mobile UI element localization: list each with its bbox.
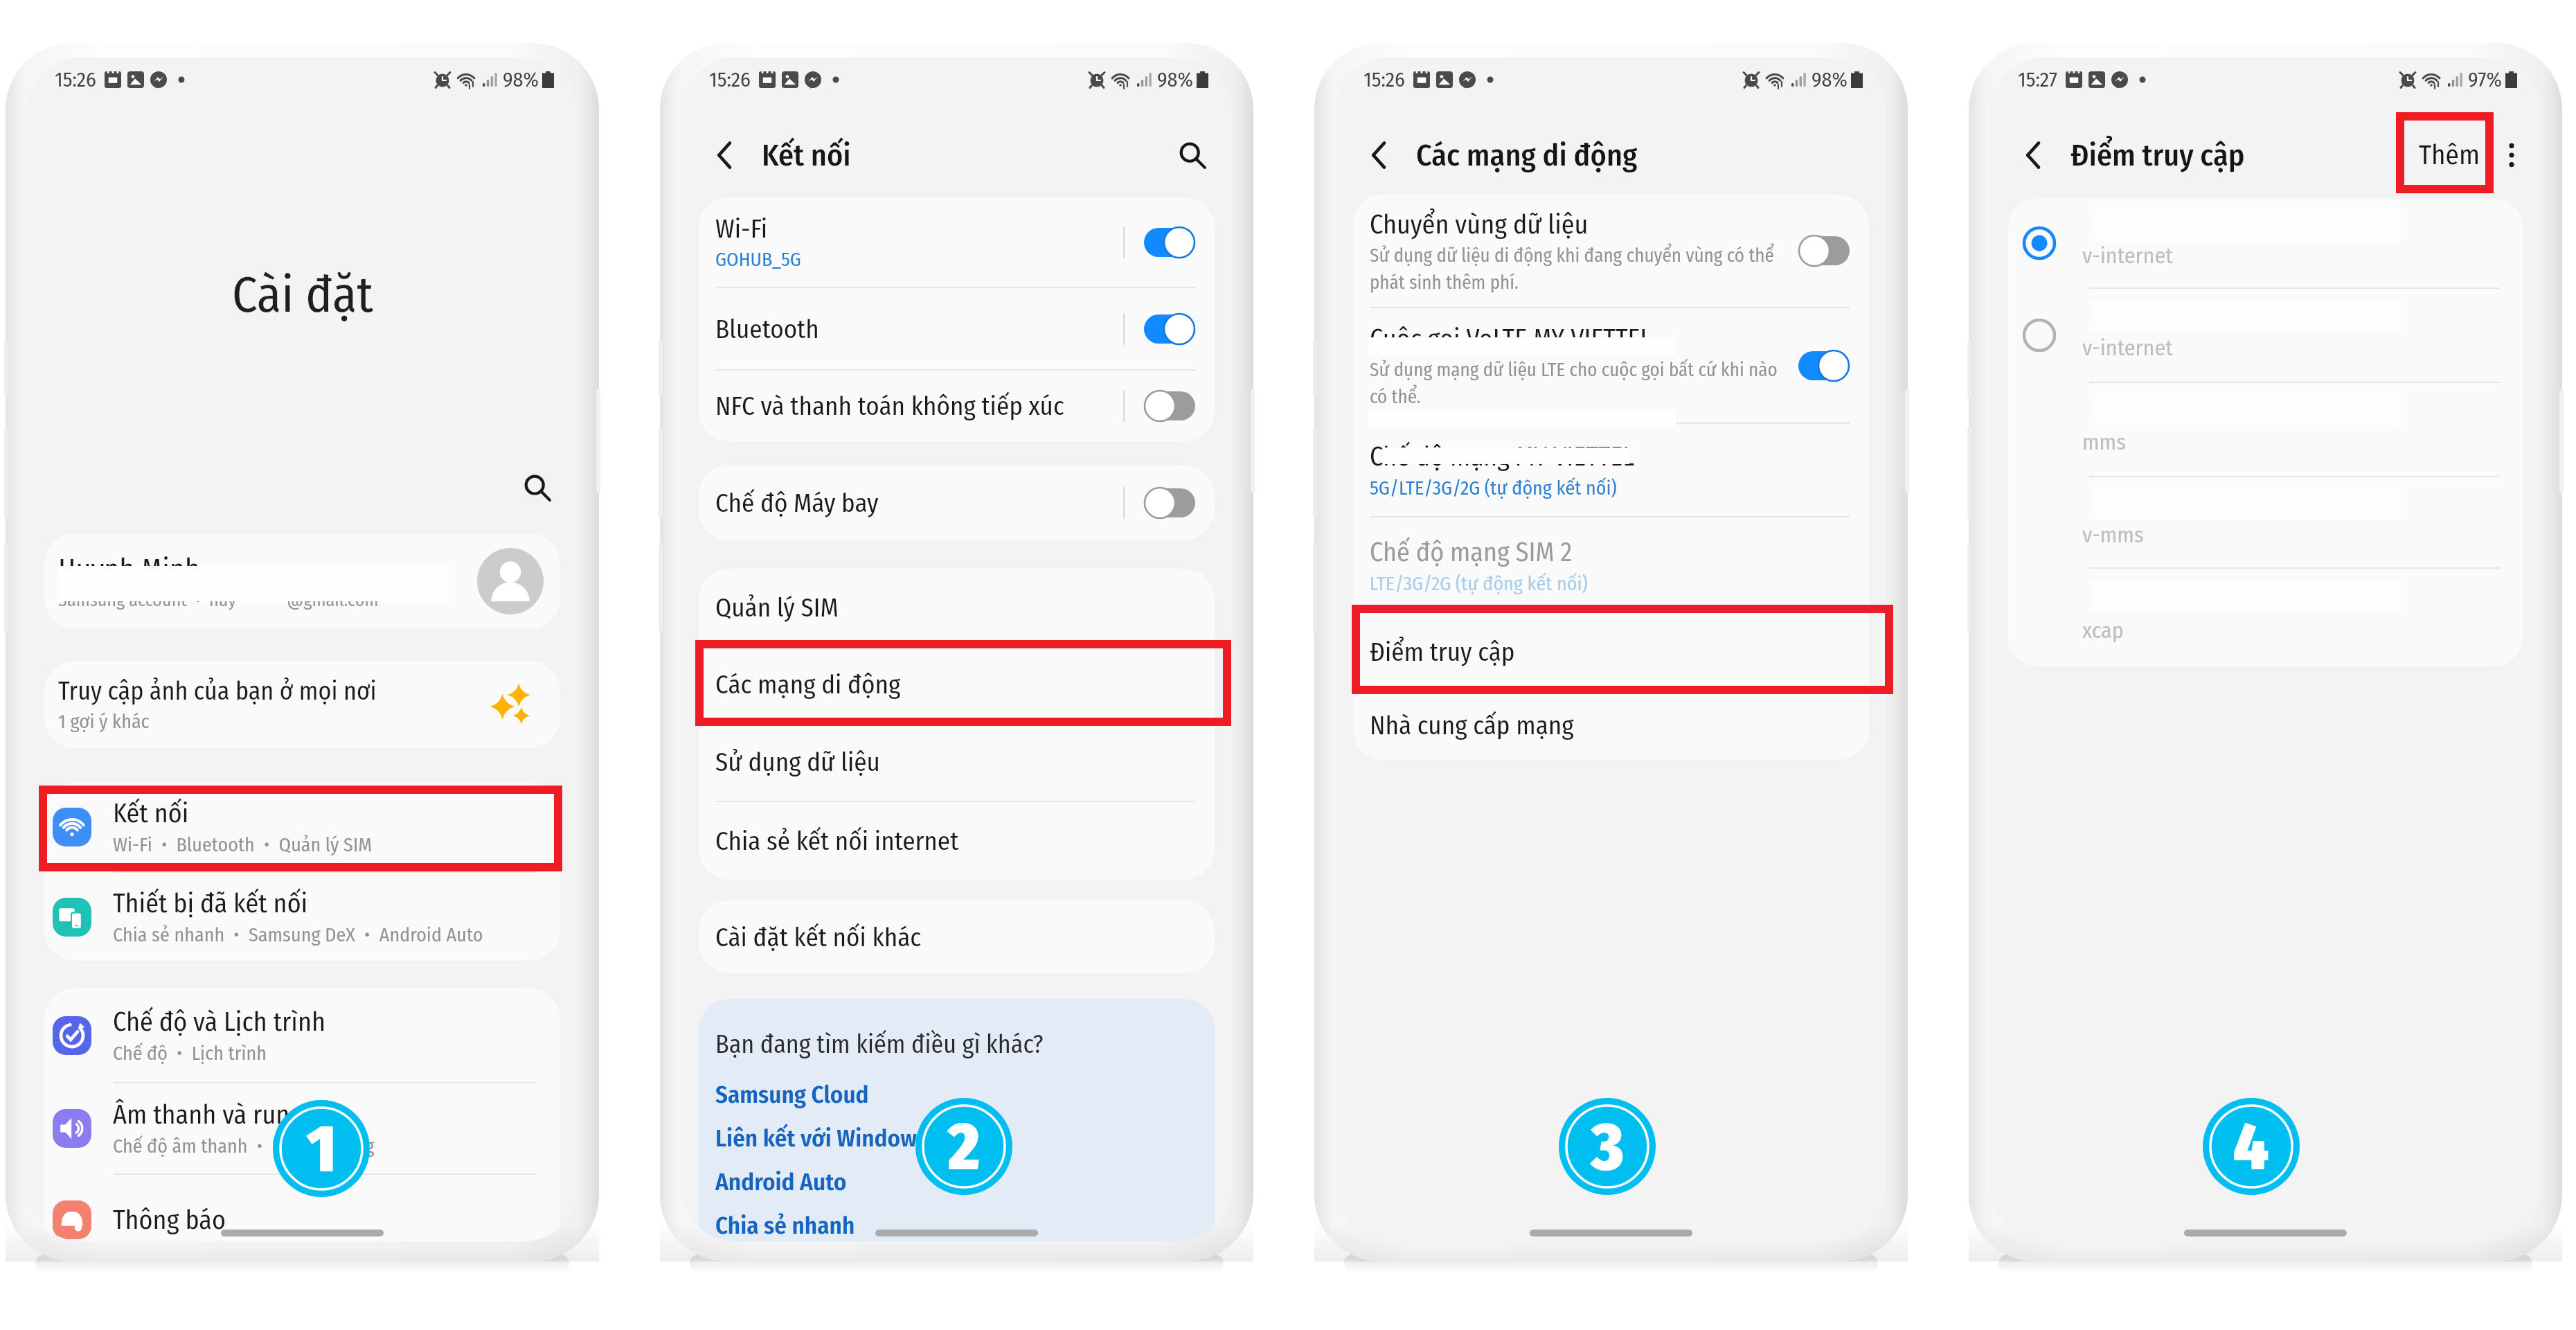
staticText: 15:26	[55, 67, 96, 92]
staticText: mms	[2082, 429, 2126, 455]
staticText: Cuộc gọi VoLTE MY VIETTEL	[1370, 323, 1652, 355]
button[interactable]: Chia sẻ kết nối internet	[699, 802, 1215, 880]
staticText: Wi-Fi • Bluetooth • Quản lý SIM	[113, 833, 373, 857]
button[interactable]: Chế độ Máy bay	[699, 465, 1215, 540]
staticText: Âm thanh và rung	[113, 1099, 303, 1130]
staticText: GOHUB_5G	[715, 248, 801, 272]
button[interactable]: Cài đặt kết nối khác	[699, 901, 1215, 973]
staticText: Bluetooth	[715, 314, 819, 344]
button[interactable]: Search	[1172, 135, 1213, 175]
button[interactable]: Back	[2014, 135, 2054, 175]
staticText: Huynh Minh	[58, 552, 201, 587]
button[interactable]: Android Auto	[715, 1167, 847, 1196]
button[interactable]: Liên kết với Windows	[715, 1124, 928, 1153]
staticText: 4	[2233, 1107, 2269, 1187]
button[interactable]: Chế độ mạng MY VIETTEL	[1353, 424, 1869, 516]
staticText: Android Auto	[715, 1167, 847, 1196]
button[interactable]: Wi-Fi	[1144, 227, 1195, 258]
staticText: v-mms	[2082, 522, 2144, 548]
staticText: Sử dụng mạng dữ liệu LTE cho cuộc gọi bấ…	[1370, 359, 1785, 408]
staticText: Thiết bị đã kết nối	[113, 887, 308, 919]
button[interactable]: Back	[1359, 135, 1399, 175]
staticText: Thêm	[2419, 139, 2480, 172]
staticText: Các mạng di động	[715, 669, 901, 700]
staticText: Thông báo	[113, 1204, 226, 1236]
staticText: Truy cập ảnh của bạn ở mọi nơi	[58, 676, 377, 706]
button[interactable]: Chia sẻ nhanh	[715, 1211, 855, 1240]
button[interactable]: Cuộc gọi VoLTE	[1798, 350, 1850, 382]
button[interactable]: xcap	[2007, 569, 2523, 666]
button[interactable]: Điểm truy cập	[1353, 614, 1869, 690]
button[interactable]: v-mms	[2007, 477, 2523, 567]
staticText: Chế độ Máy bay	[715, 488, 879, 518]
button[interactable]: Kết nối	[44, 783, 560, 871]
button[interactable]: Chuyển vùng dữ liệu	[1353, 195, 1869, 307]
button[interactable]: Các mạng di động	[699, 646, 1215, 722]
button[interactable]: Search	[512, 462, 563, 513]
staticText: 15:26	[709, 67, 751, 92]
staticText: 98%	[1157, 67, 1194, 92]
staticText: NFC và thanh toán không tiếp xúc	[715, 391, 1064, 421]
staticText: 5G/LTE/3G/2G (tự động kết nối)	[1370, 477, 1617, 500]
staticText: Chia sẻ nhanh	[715, 1211, 855, 1240]
button[interactable]: Huynh Minh	[44, 533, 560, 629]
staticText: 97%	[2468, 67, 2503, 92]
staticText: 15:27	[2018, 67, 2057, 92]
staticText: Chế độ mạng SIM 2	[1370, 536, 1573, 568]
staticText: xcap	[2082, 617, 2124, 644]
button[interactable]: Thiết bị đã kết nối	[44, 873, 560, 961]
button[interactable]: v-internet	[2007, 289, 2523, 382]
button[interactable]: mms	[2007, 383, 2523, 476]
staticText: 1 gợi ý khác	[58, 710, 150, 734]
staticText: Kết nối	[113, 797, 189, 829]
button[interactable]: Chế độ mạng SIM 2	[1353, 517, 1869, 614]
staticText: 15:26	[1363, 67, 1405, 92]
button[interactable]: Chế độ và Lịch trình	[44, 988, 560, 1082]
button[interactable]: Nhà cung cấp mạng	[1353, 690, 1869, 760]
staticText: Chia sẻ kết nối internet	[715, 826, 959, 856]
staticText: 3	[1591, 1107, 1624, 1187]
staticText: 98%	[1812, 67, 1848, 92]
button[interactable]: Cuộc gọi VoLTE MY VIETTEL	[1353, 308, 1869, 423]
button[interactable]: Chế độ Máy bay	[1144, 487, 1195, 519]
button[interactable]: Sử dụng dữ liệu	[699, 722, 1215, 801]
button[interactable]: Bluetooth	[699, 288, 1215, 369]
staticText: Chế độ và Lịch trình	[113, 1006, 325, 1038]
button[interactable]: Back	[705, 135, 745, 175]
button[interactable]: NFC và thanh toán không tiếp xúc	[1144, 390, 1195, 422]
staticText: v-internet	[2082, 335, 2173, 361]
button[interactable]: Samsung Cloud	[715, 1080, 869, 1109]
button[interactable]: Bluetooth	[1144, 313, 1195, 345]
button[interactable]: Wi-Fi	[699, 197, 1215, 287]
button[interactable]: Quản lý SIM	[699, 569, 1215, 646]
staticText: Điểm truy cập	[2070, 137, 2245, 174]
staticText: Wi-Fi	[715, 213, 768, 244]
staticText: Kết nối	[762, 137, 851, 174]
button[interactable]: Chuyển vùng dữ liệu	[1798, 235, 1850, 267]
button[interactable]: Thông báo	[44, 1175, 560, 1241]
button[interactable]: v-internet	[2007, 199, 2523, 287]
staticText: LTE/3G/2G (tự động kết nối)	[1370, 572, 1588, 596]
staticText: v-internet	[2082, 242, 2173, 269]
staticText: Liên kết với Windows	[715, 1124, 928, 1153]
staticText: 1	[307, 1109, 337, 1189]
staticText: Cài đặt kết nối khác	[715, 922, 922, 952]
staticText: Samsung account • huy @gmail.com	[58, 589, 379, 611]
staticText: 2	[948, 1107, 980, 1187]
staticText: Nhà cung cấp mạng	[1370, 710, 1574, 741]
button[interactable]: Truy cập ảnh của bạn ở mọi nơi	[44, 661, 560, 748]
staticText: Samsung Cloud	[715, 1080, 869, 1109]
staticText: Cài đặt	[232, 265, 373, 325]
staticText: Chia sẻ nhanh • Samsung DeX • Android Au…	[113, 923, 483, 947]
staticText: Các mạng di động	[1416, 137, 1638, 174]
button[interactable]: More options	[2496, 140, 2527, 170]
button[interactable]: Thêm	[2409, 130, 2489, 181]
staticText: 98%	[503, 67, 539, 92]
staticText: Chuyển vùng dữ liệu	[1370, 209, 1589, 240]
staticText: Chế độ mạng MY VIETTEL	[1370, 441, 1634, 472]
button[interactable]: Âm thanh và rung	[44, 1083, 560, 1173]
staticText: Quản lý SIM	[715, 592, 839, 623]
staticText: Bạn đang tìm kiếm điều gì khác?	[715, 1029, 1044, 1059]
staticText: Chế độ • Lịch trình	[113, 1042, 267, 1065]
button[interactable]: NFC và thanh toán không tiếp xúc	[699, 371, 1215, 441]
